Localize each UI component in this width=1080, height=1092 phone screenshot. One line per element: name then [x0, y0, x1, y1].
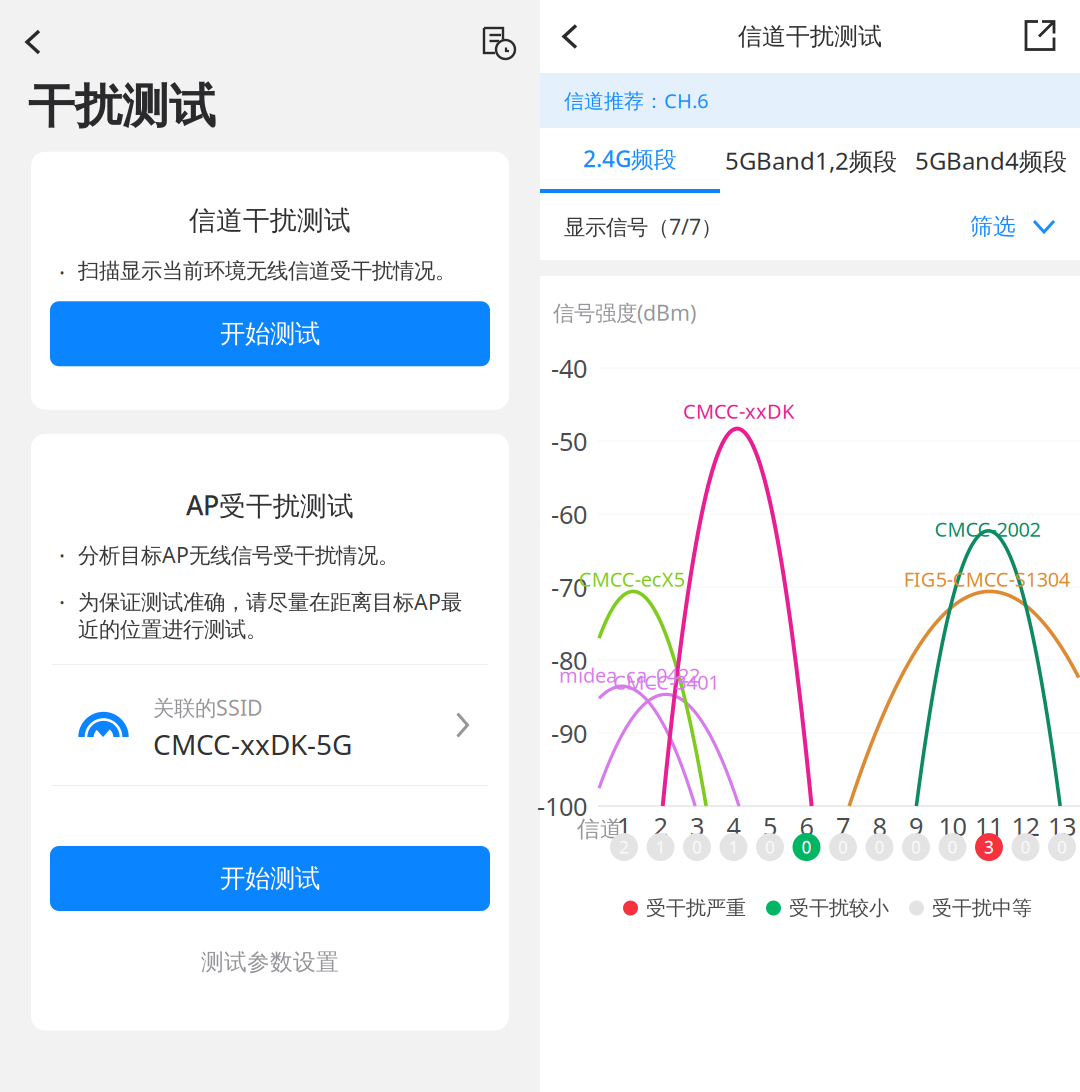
staticText: 0 — [911, 835, 921, 859]
staticText: 0 — [765, 835, 775, 859]
staticText: 0 — [801, 835, 811, 859]
staticText: 干扰测试 — [28, 77, 216, 136]
staticText: 9 — [909, 809, 923, 843]
staticText: 0 — [874, 835, 884, 859]
staticText: 信道推荐：CH.6 — [564, 87, 708, 114]
staticText: · — [59, 257, 65, 288]
staticText: -90 — [551, 716, 587, 750]
staticText: 3 — [984, 835, 994, 859]
staticText: 11 — [975, 809, 1003, 843]
staticText: 6 — [799, 809, 813, 843]
staticText: 信号强度(dBm) — [553, 298, 696, 327]
button[interactable]: 开始测试 — [50, 301, 490, 366]
staticText: 分析目标AP无线信号受干扰情况。 — [78, 540, 399, 569]
staticText: AP受干扰测试 — [186, 487, 354, 523]
staticText: 5GBand1,2频段 — [725, 144, 897, 177]
staticText: -50 — [551, 424, 587, 458]
staticText: -60 — [551, 497, 587, 531]
staticText: 信道干扰测试 — [189, 204, 351, 237]
staticText: 开始测试 — [220, 318, 320, 350]
staticText: 2 — [653, 809, 667, 843]
staticText: 1 — [617, 809, 631, 843]
staticText: -40 — [551, 351, 587, 385]
button[interactable]: Back — [540, 0, 594, 73]
staticText: 7 — [836, 809, 850, 843]
staticText: 0 — [947, 835, 957, 859]
button[interactable]: 测试参数设置 — [31, 911, 509, 1031]
staticText: 5GBand4频段 — [915, 144, 1067, 177]
button[interactable]: History — [482, 0, 540, 66]
staticText: · — [59, 540, 65, 571]
staticText: 筛选 — [970, 212, 1016, 241]
staticText: -100 — [537, 789, 587, 823]
staticText: 0 — [1020, 835, 1030, 859]
staticText: CMCC-3401 — [613, 668, 719, 696]
button[interactable]: 开始测试 — [50, 846, 490, 911]
staticText: · — [59, 587, 65, 618]
staticText: -70 — [551, 570, 587, 604]
staticText: midea_ca_0422 — [559, 661, 700, 689]
staticText: 1 — [728, 835, 738, 859]
staticText: 显示信号（7/7） — [564, 212, 722, 241]
staticText: 10 — [938, 809, 966, 843]
staticText: 0 — [1057, 835, 1067, 859]
button[interactable]: 关联的SSID — [31, 665, 509, 785]
staticText: CMCC-xxDK-5G — [153, 725, 352, 763]
staticText: 5 — [763, 809, 777, 843]
button[interactable]: 2.4G频段 — [540, 128, 720, 193]
staticText: 0 — [838, 835, 848, 859]
staticText: 2.4G频段 — [583, 143, 677, 174]
staticText: -80 — [551, 643, 587, 677]
staticText: 2 — [619, 835, 629, 859]
button[interactable]: Share — [1024, 0, 1080, 73]
staticText: 0 — [692, 835, 702, 859]
staticText: 1 — [655, 835, 665, 859]
staticText: 8 — [872, 809, 886, 843]
staticText: 3 — [690, 809, 704, 843]
staticText: CMCC-2002 — [934, 515, 1040, 543]
staticText: FIG5-CMCC-S1304 — [904, 565, 1070, 593]
staticText: CMCC-xxDK — [683, 397, 794, 425]
staticText: 测试参数设置 — [201, 948, 339, 977]
button[interactable]: 显示信号（7/7） — [540, 193, 1080, 260]
staticText: 12 — [1011, 809, 1039, 843]
staticText: 开始测试 — [220, 863, 320, 894]
staticText: CMCC-ecX5 — [579, 565, 685, 593]
staticText: 受干扰严重 — [646, 895, 746, 921]
staticText: 为保证测试准确，请尽量在距离目标AP最近的位置进行测试。 — [78, 587, 462, 643]
staticText: 信道 — [577, 815, 623, 843]
button[interactable]: 5GBand1,2频段 — [720, 128, 902, 193]
staticText: 受干扰较小 — [789, 895, 889, 921]
staticText: 扫描显示当前环境无线信道受干扰情况。 — [78, 257, 456, 284]
staticText: 关联的SSID — [153, 693, 263, 722]
staticText: 信道干扰测试 — [738, 21, 882, 52]
button[interactable]: Back — [0, 0, 59, 66]
staticText: 13 — [1048, 809, 1076, 843]
staticText: 受干扰中等 — [932, 895, 1032, 921]
button[interactable]: 5GBand4频段 — [902, 128, 1080, 193]
staticText: 4 — [726, 809, 740, 843]
